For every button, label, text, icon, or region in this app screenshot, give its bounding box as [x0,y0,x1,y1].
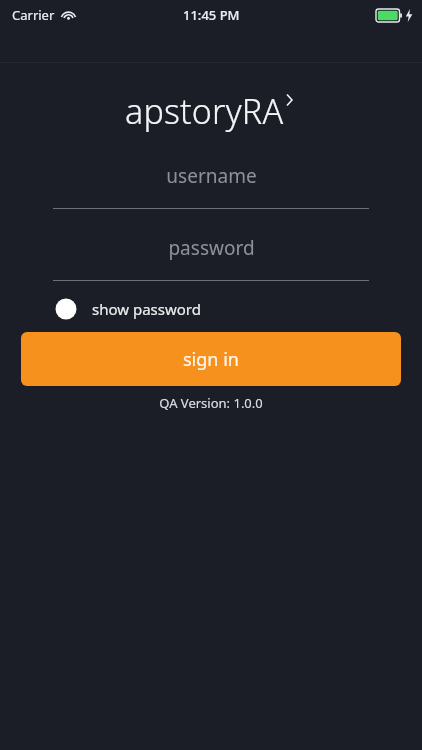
staticText: show password [92,299,201,319]
staticText: Carrier [12,6,55,24]
button[interactable]: username [53,158,369,209]
staticText: QA Version: 1.0.0 [159,394,263,412]
staticText: password [168,235,255,261]
staticText: 11:45 PM [183,6,240,24]
staticText: username [166,163,257,189]
staticText: sign in [183,347,239,372]
button[interactable]: show password [55,298,367,320]
staticText: apstoryRA [125,88,284,134]
button[interactable]: sign in [21,332,401,386]
button[interactable]: password [53,230,369,281]
